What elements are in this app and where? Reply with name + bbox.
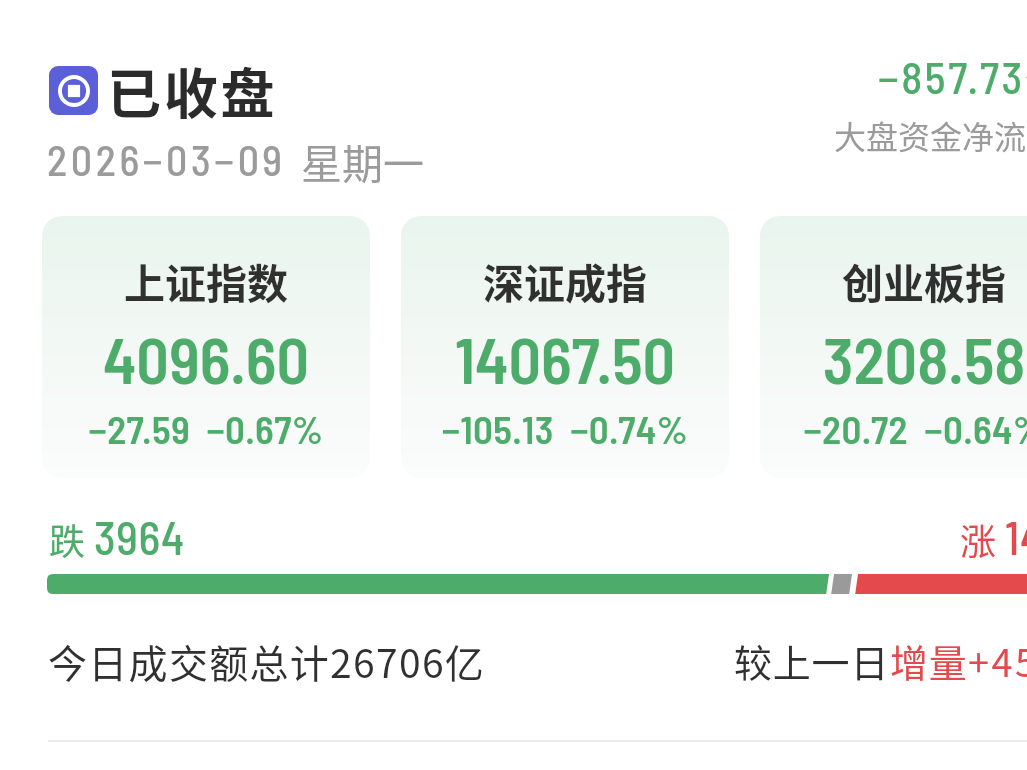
staticText: 亿	[1025, 49, 1027, 107]
staticText: −857.73	[878, 50, 1025, 103]
staticText: 创业板指	[760, 251, 1027, 310]
staticText: 今日成交额总计26706亿	[48, 633, 486, 689]
staticText: 跌	[49, 513, 86, 565]
staticText: 3208.58	[760, 320, 1027, 397]
staticText: 已收盘	[107, 51, 278, 129]
staticText: 较上一日	[734, 633, 890, 688]
staticText: 1400	[1005, 509, 1027, 564]
staticText: −27.59 −0.67%	[42, 405, 370, 452]
staticText: 2026−03−09	[47, 134, 286, 184]
staticText: 14067.50	[401, 320, 729, 397]
staticText: 星期一	[301, 131, 424, 190]
staticText: 深证成指	[401, 251, 729, 310]
staticText: 增量	[890, 633, 968, 688]
button[interactable]: Market closed	[49, 66, 98, 115]
button[interactable]: 深证成指	[401, 216, 729, 478]
button[interactable]: 创业板指	[760, 216, 1027, 478]
staticText: −20.72 −0.64%	[760, 405, 1027, 452]
button[interactable]: 上证指数	[42, 216, 370, 478]
staticText: 涨	[960, 513, 997, 565]
staticText: 上证指数	[42, 251, 370, 310]
staticText: 大盘资金净流入	[834, 112, 1027, 158]
staticText: 4096.60	[42, 320, 370, 397]
staticText: +450亿	[968, 633, 1027, 688]
staticText: −105.13 −0.74%	[401, 405, 729, 452]
staticText: 3964	[94, 509, 186, 564]
